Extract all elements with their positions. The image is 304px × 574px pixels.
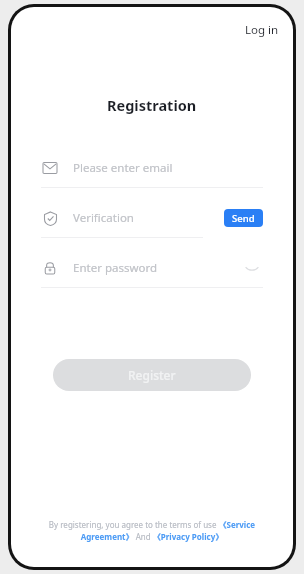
- other: Email: [41, 159, 59, 177]
- staticText: Verification: [73, 210, 134, 226]
- other: Verification code: [41, 209, 59, 227]
- other: Password: [41, 259, 59, 277]
- button[interactable]: Password: [41, 254, 263, 282]
- staticText: Please enter email: [73, 160, 173, 176]
- staticText: By registering, you agree to the terms o…: [31, 519, 273, 543]
- button[interactable]: Register: [53, 359, 251, 391]
- button[interactable]: Send: [224, 209, 263, 227]
- staticText: Enter password: [73, 260, 158, 276]
- button[interactable]: Show password: [241, 257, 263, 279]
- staticText: Registration: [107, 95, 197, 115]
- button[interactable]: Log in: [239, 19, 285, 41]
- button[interactable]: Email: [41, 154, 263, 182]
- staticText: Send: [232, 212, 255, 225]
- staticText: Log in: [245, 22, 279, 38]
- button[interactable]: Verification code: [41, 204, 263, 232]
- button[interactable]: By registering, you agree to the terms o…: [31, 519, 273, 543]
- staticText: Register: [128, 367, 176, 383]
